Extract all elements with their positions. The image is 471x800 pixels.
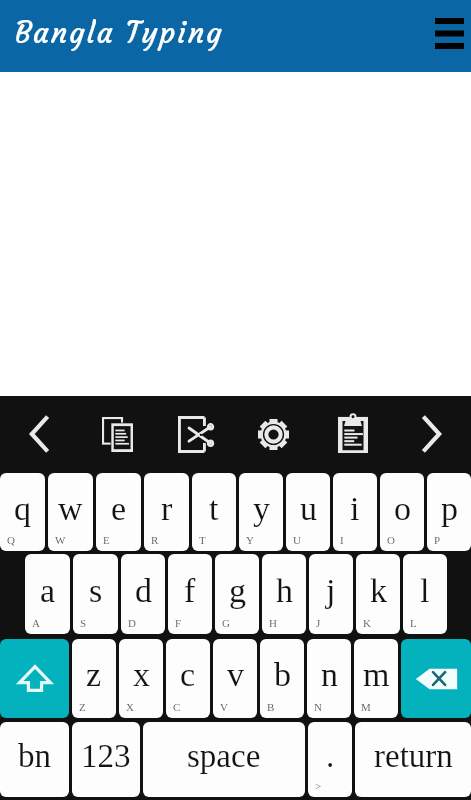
staticText: p bbox=[441, 490, 458, 528]
button[interactable]: u bbox=[286, 473, 330, 551]
staticText: i bbox=[350, 490, 360, 528]
button[interactable]: 123 bbox=[72, 722, 140, 797]
staticText: S bbox=[80, 617, 87, 629]
button[interactable]: t bbox=[192, 473, 236, 551]
staticText: > bbox=[315, 780, 322, 792]
staticText: space bbox=[187, 738, 261, 775]
button[interactable]: h bbox=[262, 554, 306, 634]
staticText: o bbox=[394, 490, 411, 528]
button[interactable]: w bbox=[48, 473, 93, 551]
staticText: w bbox=[58, 490, 83, 528]
staticText: B bbox=[267, 701, 275, 713]
staticText: n bbox=[321, 656, 338, 694]
button[interactable]: d bbox=[121, 554, 165, 634]
staticText: e bbox=[111, 490, 127, 528]
staticText: z bbox=[86, 656, 102, 694]
staticText: Z bbox=[79, 701, 86, 713]
button[interactable]: l bbox=[403, 554, 447, 634]
staticText: O bbox=[387, 534, 395, 546]
staticText: . bbox=[326, 738, 335, 775]
button[interactable]: s bbox=[73, 554, 118, 634]
staticText: N bbox=[314, 701, 322, 713]
staticText: R bbox=[151, 534, 159, 546]
staticText: q bbox=[14, 490, 31, 528]
staticText: bn bbox=[18, 738, 51, 775]
button[interactable]: q bbox=[0, 473, 45, 551]
staticText: y bbox=[253, 490, 270, 528]
staticText: H bbox=[269, 617, 277, 629]
staticText: a bbox=[40, 572, 56, 610]
button[interactable]: Next bbox=[392, 396, 471, 472]
staticText: j bbox=[326, 572, 336, 610]
button[interactable]: m bbox=[354, 639, 398, 718]
staticText: c bbox=[180, 656, 196, 694]
button[interactable]: a bbox=[25, 554, 70, 634]
button[interactable]: Settings bbox=[234, 396, 313, 472]
button[interactable]: Backspace bbox=[401, 639, 471, 718]
staticText: g bbox=[229, 572, 246, 610]
button[interactable]: g bbox=[215, 554, 259, 634]
button[interactable]: e bbox=[96, 473, 141, 551]
staticText: s bbox=[89, 572, 103, 610]
button[interactable]: space bbox=[143, 722, 305, 797]
staticText: T bbox=[199, 534, 206, 546]
staticText: 123 bbox=[81, 738, 131, 775]
staticText: C bbox=[173, 701, 181, 713]
staticText: P bbox=[434, 534, 441, 546]
button[interactable]: n bbox=[307, 639, 351, 718]
staticText: d bbox=[135, 572, 152, 610]
button[interactable]: i bbox=[333, 473, 377, 551]
staticText: W bbox=[55, 534, 66, 546]
button[interactable]: z bbox=[72, 639, 116, 718]
staticText: t bbox=[209, 490, 219, 528]
staticText: V bbox=[220, 701, 228, 713]
button[interactable]: b bbox=[260, 639, 304, 718]
staticText: M bbox=[361, 701, 371, 713]
button[interactable]: Cut bbox=[156, 396, 234, 472]
staticText: X bbox=[126, 701, 134, 713]
staticText: return bbox=[374, 738, 453, 775]
staticText: K bbox=[363, 617, 371, 629]
staticText: l bbox=[420, 572, 430, 610]
staticText: Bangla Typing bbox=[15, 15, 428, 51]
staticText: F bbox=[175, 617, 182, 629]
button[interactable]: Previous bbox=[0, 396, 78, 472]
staticText: A bbox=[32, 617, 40, 629]
staticText: U bbox=[293, 534, 301, 546]
staticText: k bbox=[370, 572, 387, 610]
staticText: f bbox=[184, 572, 196, 610]
staticText: J bbox=[316, 617, 321, 629]
staticText: r bbox=[161, 490, 173, 528]
button[interactable]: f bbox=[168, 554, 212, 634]
button[interactable]: o bbox=[380, 473, 424, 551]
staticText: h bbox=[276, 572, 293, 610]
button[interactable]: return bbox=[355, 722, 471, 797]
staticText: I bbox=[340, 534, 344, 546]
button[interactable]: Menu bbox=[428, 0, 471, 69]
button[interactable]: k bbox=[356, 554, 400, 634]
staticText: L bbox=[410, 617, 417, 629]
button[interactable]: v bbox=[213, 639, 257, 718]
staticText: b bbox=[274, 656, 291, 694]
button[interactable]: j bbox=[309, 554, 353, 634]
staticText: v bbox=[227, 656, 244, 694]
button[interactable]: bn bbox=[0, 722, 69, 797]
staticText: Q bbox=[7, 534, 15, 546]
button[interactable]: . bbox=[308, 722, 352, 797]
button[interactable]: r bbox=[144, 473, 189, 551]
staticText: m bbox=[363, 656, 390, 694]
staticText: Y bbox=[246, 534, 254, 546]
button[interactable]: x bbox=[119, 639, 163, 718]
staticText: D bbox=[128, 617, 136, 629]
staticText: u bbox=[300, 490, 317, 528]
button[interactable]: c bbox=[166, 639, 210, 718]
button[interactable]: Paste bbox=[313, 396, 392, 472]
button[interactable]: y bbox=[239, 473, 283, 551]
button[interactable]: Shift bbox=[0, 639, 69, 718]
staticText: G bbox=[222, 617, 230, 629]
staticText: E bbox=[103, 534, 110, 546]
staticText: x bbox=[133, 656, 150, 694]
button[interactable]: Copy bbox=[78, 396, 156, 472]
button[interactable]: p bbox=[427, 473, 471, 551]
